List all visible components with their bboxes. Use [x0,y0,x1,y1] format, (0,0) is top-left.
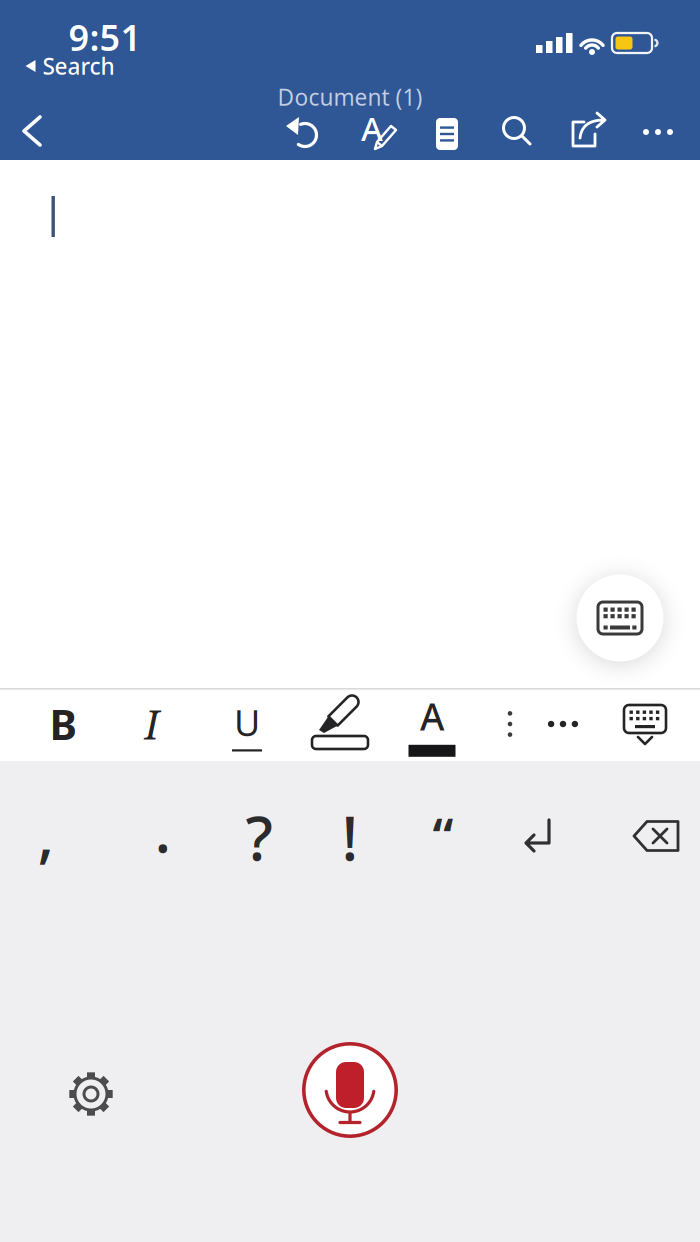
staticText: A [361,106,383,150]
button[interactable]: “ [403,800,483,870]
staticText: ? [245,796,272,878]
staticText: B [49,697,76,751]
button[interactable] [302,1042,398,1138]
button[interactable] [568,109,612,153]
staticText: A [420,691,444,741]
button[interactable]: ! [310,802,390,872]
staticText: Search [42,51,114,81]
staticText: Document (1) [277,82,422,112]
button[interactable] [312,692,368,752]
button[interactable] [632,820,680,852]
button[interactable] [14,109,58,153]
button[interactable] [515,814,561,858]
button[interactable]: I [124,696,180,752]
button[interactable]: A [355,109,399,153]
button[interactable] [620,701,670,749]
staticText: U [234,698,260,746]
button[interactable]: B [35,696,91,752]
staticText: I [144,697,159,751]
staticText: “ [432,801,453,869]
button[interactable] [495,110,539,154]
button[interactable]: Search [25,54,115,78]
button[interactable] [283,110,327,154]
button[interactable] [636,110,680,154]
button[interactable]: A [402,694,462,754]
button[interactable]: . [123,794,203,864]
button[interactable]: ? [219,802,299,872]
staticText: ! [341,796,358,878]
button[interactable] [572,570,668,666]
button[interactable] [67,1070,115,1118]
button[interactable] [425,112,469,156]
button[interactable]: , [6,798,86,868]
staticText: , [37,792,54,874]
staticText: . [154,788,171,870]
button[interactable]: U [219,697,275,753]
button[interactable] [535,696,591,752]
staticText: 9:51 [68,13,141,61]
